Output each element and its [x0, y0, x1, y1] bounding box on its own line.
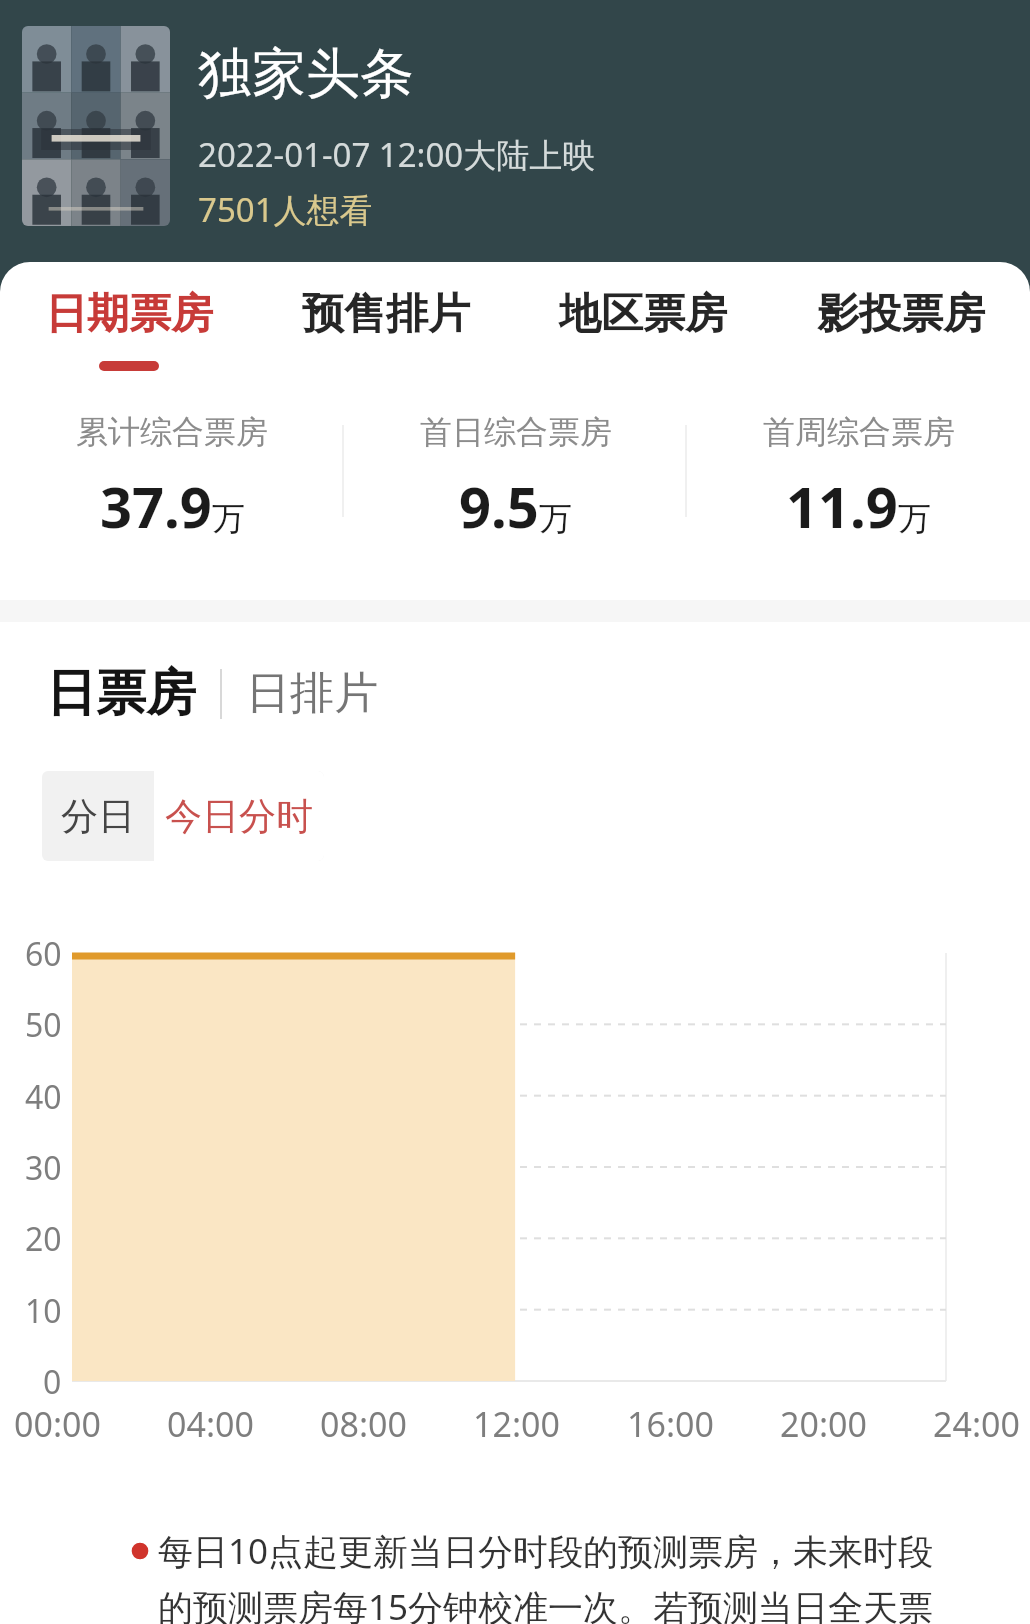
staticText: 10: [25, 1289, 62, 1333]
button[interactable]: 分日: [42, 771, 154, 861]
button[interactable]: 地区票房: [514, 262, 772, 384]
staticText: 40: [25, 1075, 62, 1119]
staticText: 20: [25, 1217, 62, 1261]
staticText: 0: [43, 1360, 62, 1404]
staticText: 日期票房: [45, 288, 213, 341]
staticText: 首日综合票房: [420, 412, 612, 452]
staticText: 影投票房: [817, 288, 985, 341]
staticText: 11.9: [786, 468, 898, 544]
button[interactable]: 日票房: [46, 662, 196, 725]
staticText: 每日10点起更新当日分时段的预测票房，未来时段的预测票房每15分钟校准一次。若预…: [158, 1527, 934, 1624]
staticText: 万: [212, 498, 245, 540]
staticText: 分日: [61, 793, 135, 840]
staticText: 00:00: [14, 1401, 101, 1447]
staticText: 37.9: [100, 468, 212, 544]
button[interactable]: 日期票房: [0, 262, 257, 384]
staticText: 2022-01-07 12:00大陆上映: [198, 132, 596, 177]
staticText: 16:00: [627, 1401, 714, 1447]
staticText: 60: [25, 932, 62, 976]
staticText: 日排片: [246, 666, 378, 721]
button[interactable]: Movie poster 独家头条: [22, 26, 170, 226]
staticText: 30: [25, 1146, 62, 1190]
staticText: 24:00: [933, 1401, 1020, 1447]
staticText: 累计综合票房: [76, 412, 268, 452]
staticText: 地区票房: [559, 288, 727, 341]
staticText: 万: [898, 498, 931, 540]
staticText: 20:00: [780, 1401, 867, 1447]
staticText: 独家头条: [198, 40, 414, 108]
staticText: 9.5: [459, 468, 539, 544]
staticText: 50: [25, 1003, 62, 1047]
staticText: 08:00: [320, 1401, 407, 1447]
staticText: 12:00: [473, 1401, 560, 1447]
staticText: 日票房: [46, 662, 196, 725]
staticText: 今日分时: [165, 793, 313, 840]
staticText: 04:00: [167, 1401, 254, 1447]
staticText: 首周综合票房: [763, 412, 955, 452]
staticText: 预售排片: [302, 288, 470, 341]
button[interactable]: 日排片: [246, 666, 378, 721]
button[interactable]: 影投票房: [772, 262, 1030, 384]
button[interactable]: 预售排片: [257, 262, 514, 384]
staticText: 7501人想看: [198, 187, 373, 232]
staticText: 万: [539, 498, 572, 540]
button[interactable]: 今日分时: [154, 771, 324, 861]
